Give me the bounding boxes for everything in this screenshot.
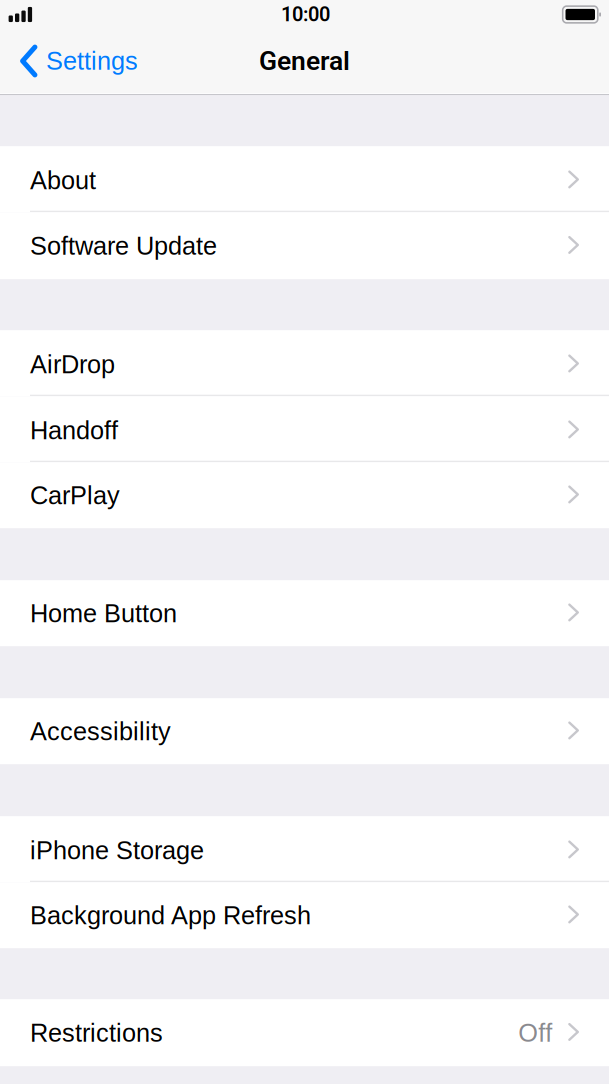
staticText: 10:00: [281, 3, 330, 26]
button[interactable]: Settings: [0, 36, 148, 86]
staticText: Accessibility: [30, 717, 171, 746]
staticText: CarPlay: [30, 481, 120, 510]
staticText: Background App Refresh: [30, 901, 311, 930]
staticText: General: [259, 45, 350, 76]
button[interactable]: AirDrop: [0, 330, 609, 396]
staticText: Handoff: [30, 416, 118, 445]
button[interactable]: Restrictions: [0, 999, 609, 1066]
button[interactable]: Software Update: [0, 212, 609, 279]
button[interactable]: iPhone Storage: [0, 816, 609, 882]
staticText: Home Button: [30, 599, 177, 628]
button[interactable]: CarPlay: [0, 462, 609, 528]
staticText: iPhone Storage: [30, 836, 204, 865]
button[interactable]: Accessibility: [0, 698, 609, 764]
staticText: About: [30, 166, 96, 195]
staticText: Software Update: [30, 232, 217, 260]
button[interactable]: Background App Refresh: [0, 882, 609, 948]
staticText: Off: [518, 1019, 552, 1047]
button[interactable]: About: [0, 146, 609, 212]
staticText: Settings: [46, 47, 138, 75]
staticText: AirDrop: [30, 350, 115, 379]
button[interactable]: Handoff: [0, 396, 609, 462]
staticText: Restrictions: [30, 1019, 163, 1047]
button[interactable]: Home Button: [0, 580, 609, 646]
